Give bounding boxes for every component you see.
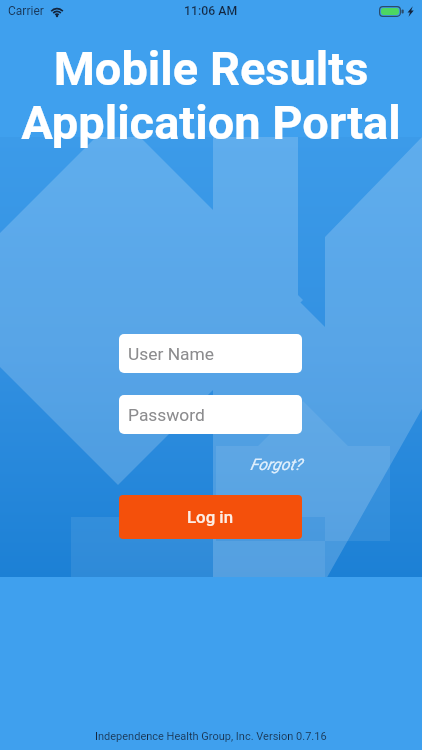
staticText: 11:06 AM bbox=[184, 4, 238, 18]
button[interactable]: Password bbox=[119, 395, 302, 434]
button[interactable]: Forgot? bbox=[250, 455, 302, 474]
staticText: Forgot? bbox=[250, 455, 302, 474]
button[interactable]: User Name bbox=[119, 334, 302, 373]
staticText: Carrier bbox=[8, 4, 44, 18]
staticText: Password bbox=[128, 405, 205, 425]
button[interactable]: Log in bbox=[119, 495, 302, 539]
staticText: Mobile Results Application Portal bbox=[0, 41, 422, 150]
staticText: User Name bbox=[128, 344, 215, 364]
staticText: Independence Health Group, Inc. Version … bbox=[95, 730, 327, 743]
staticText: Log in bbox=[187, 507, 234, 527]
